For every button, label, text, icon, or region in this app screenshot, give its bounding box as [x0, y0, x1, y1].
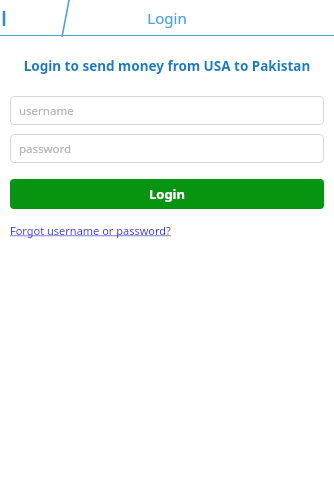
- staticText: username: [19, 103, 74, 119]
- staticText: Login: [149, 185, 185, 203]
- button[interactable]: password: [10, 134, 324, 163]
- button[interactable]: Login: [10, 179, 324, 209]
- staticText: Login to send money from USA to Pakistan: [12, 57, 322, 75]
- button[interactable]: username: [10, 96, 324, 125]
- staticText: Login: [147, 8, 187, 28]
- staticText: Forgot username or password?: [10, 223, 171, 238]
- staticText: password: [19, 141, 72, 157]
- button[interactable]: Forgot username or password?: [10, 223, 171, 238]
